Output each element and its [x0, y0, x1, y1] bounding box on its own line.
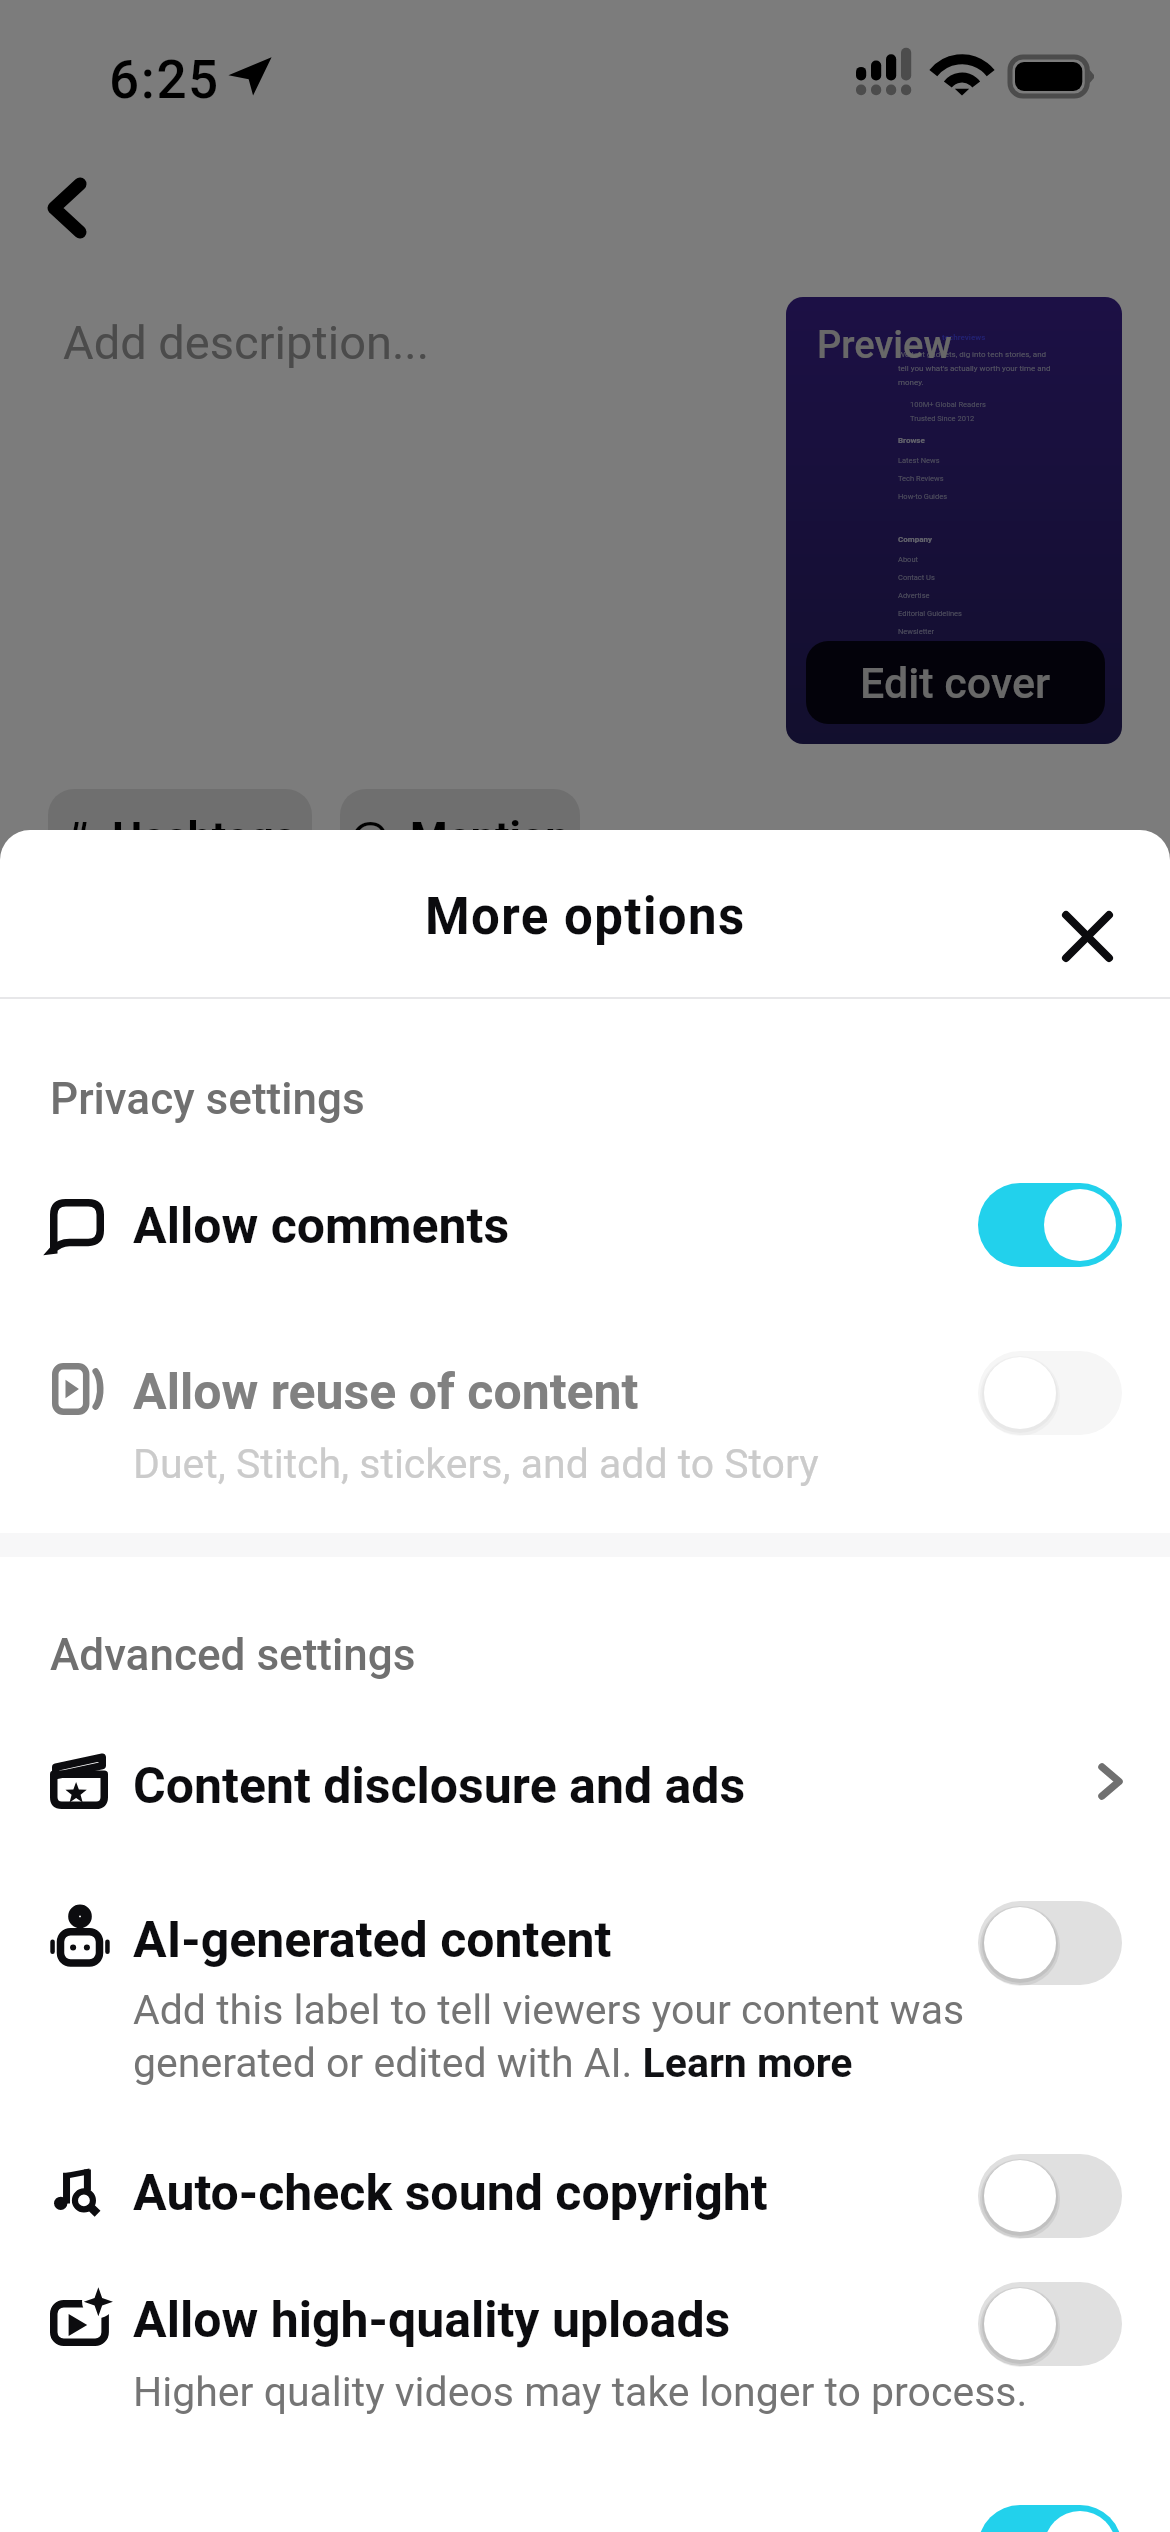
staticText: More options	[425, 887, 746, 947]
button[interactable]: @ Mention	[340, 789, 580, 885]
staticText: Add description...	[63, 315, 430, 370]
staticText: Latest News	[898, 456, 940, 465]
button[interactable]: Allow high-quality uploads	[978, 2282, 1122, 2366]
button[interactable]: AI-generated content	[978, 1901, 1122, 1985]
button[interactable]: Edit cover	[806, 641, 1105, 724]
button[interactable]: Allow comments	[978, 1183, 1122, 1267]
staticText: Allow high-quality uploads	[133, 2291, 731, 2350]
staticText: Tech Reviews	[898, 474, 944, 483]
staticText: Preview	[817, 323, 952, 368]
staticText: Higher quality videos may take longer to…	[133, 2368, 1028, 2416]
button[interactable]: More	[978, 2505, 1122, 2532]
staticText: @ Mention	[350, 812, 570, 862]
staticText: 100M+ Global Readers	[910, 400, 986, 409]
button[interactable]: # Hashtags	[48, 789, 312, 885]
staticText: 6:25	[109, 49, 220, 111]
staticText: Browse	[898, 436, 925, 445]
staticText: Advertise	[898, 591, 930, 600]
staticText: Newsletter	[898, 627, 935, 636]
staticText: Allow comments	[133, 1197, 510, 1256]
staticText: Add this label to tell viewers your cont…	[133, 1986, 965, 2087]
staticText: Edit cover	[860, 658, 1051, 708]
staticText: AI-generated content	[133, 1911, 612, 1970]
staticText: About	[898, 555, 918, 564]
staticText: techreviews	[942, 333, 986, 342]
staticText: Privacy settings	[50, 1073, 365, 1125]
staticText: We test gadgets, dig into tech stories, …	[898, 350, 1051, 387]
button[interactable]: Allow reuse of content	[978, 1351, 1122, 1435]
staticText: Allow reuse of content	[133, 1363, 639, 1422]
button[interactable]: Auto-check sound copyright	[978, 2154, 1122, 2238]
staticText: Company	[898, 535, 932, 544]
staticText: Advanced settings	[50, 1629, 416, 1681]
staticText: # Hashtags	[65, 812, 296, 862]
staticText: Editorial Guidelines	[898, 609, 962, 618]
staticText: Trusted Since 2012	[910, 414, 975, 423]
button[interactable]: Content disclosure and ads	[1099, 1764, 1122, 1799]
staticText: Duet, Stitch, stickers, and add to Story	[133, 1440, 819, 1488]
button[interactable]: Close	[1041, 890, 1133, 982]
staticText: Content disclosure and ads	[133, 1757, 746, 1816]
staticText: How-to Guides	[898, 492, 947, 501]
staticText: Contact Us	[898, 573, 935, 582]
staticText: Auto-check sound copyright	[133, 2164, 768, 2223]
